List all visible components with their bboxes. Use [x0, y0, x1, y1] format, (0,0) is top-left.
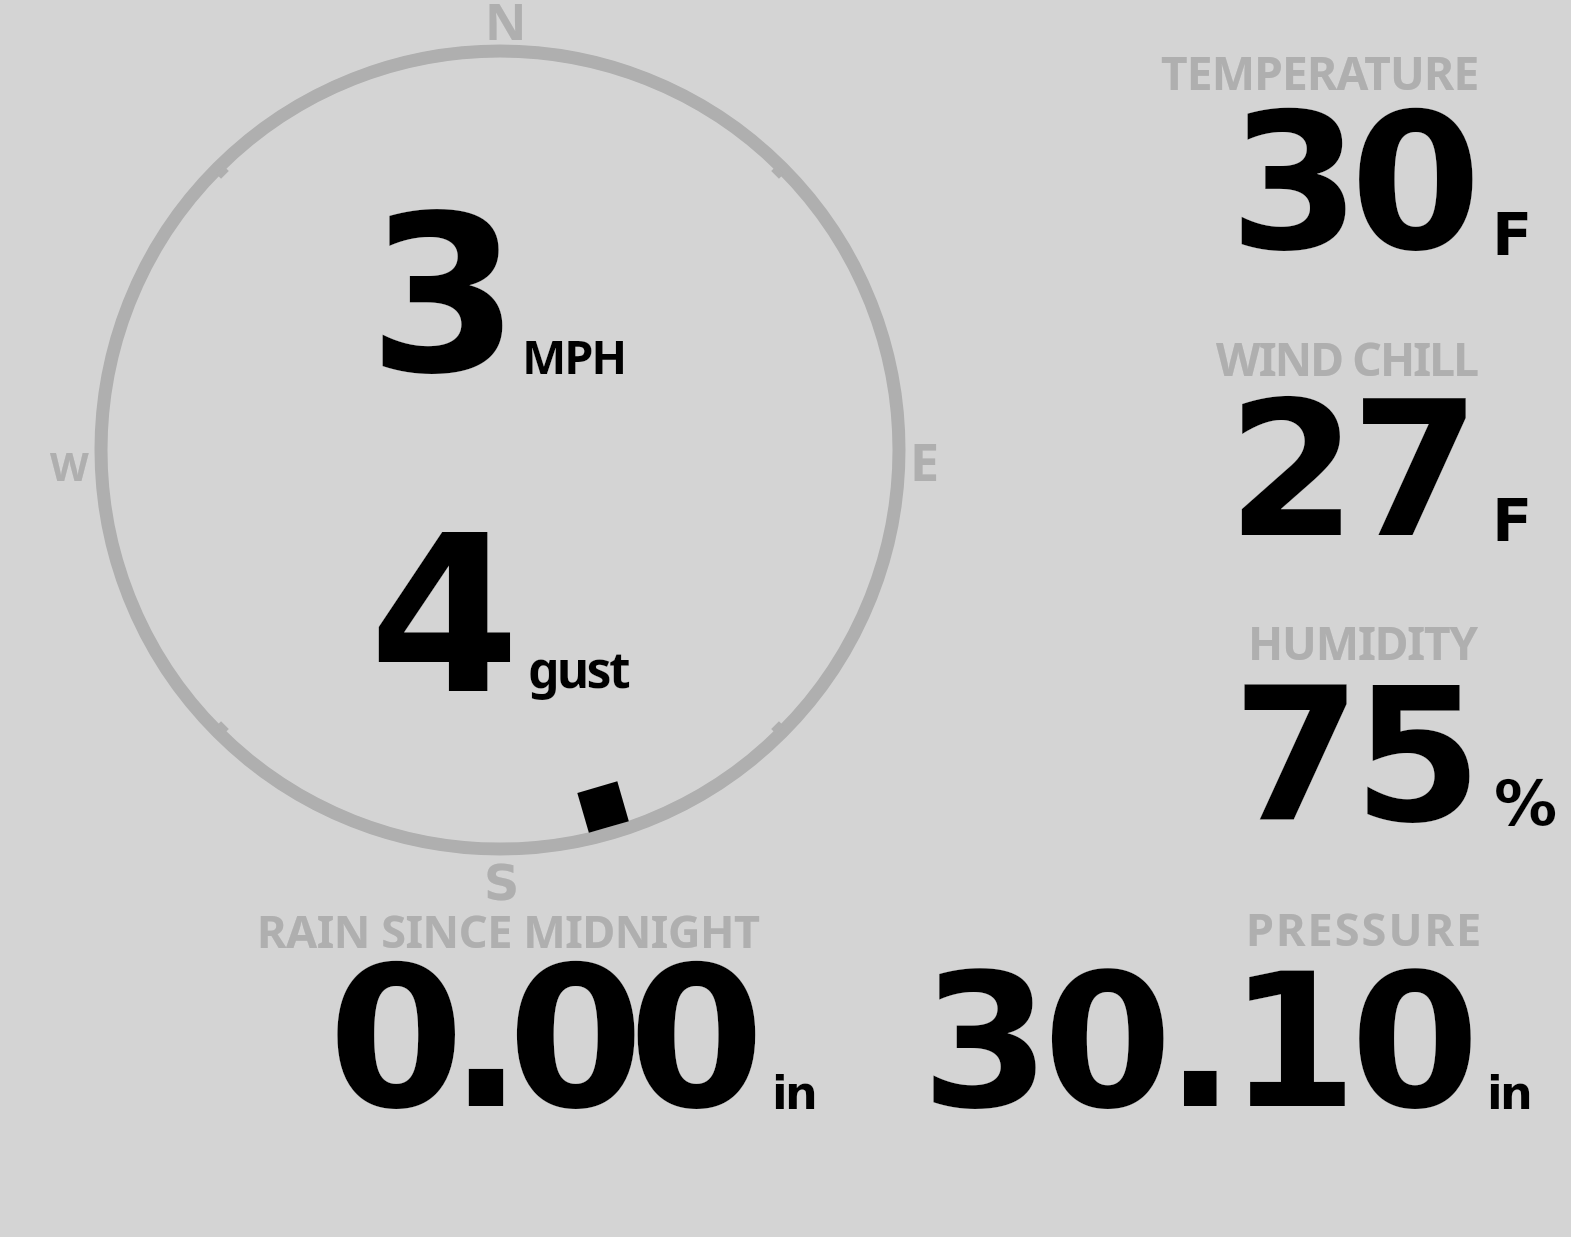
staticText: TEMPERATURE: [1161, 41, 1479, 104]
staticText: WIND CHILL: [1216, 327, 1478, 390]
staticText: MPH: [522, 324, 626, 388]
staticText: in: [1487, 1066, 1530, 1120]
staticText: S: [484, 855, 520, 912]
staticText: 3: [368, 169, 520, 423]
staticText: F: [1492, 200, 1533, 269]
button[interactable]: Temperature 30 F: [1140, 30, 1571, 285]
staticText: gust: [528, 635, 628, 703]
button[interactable]: Rain since midnight 0.00 in: [250, 900, 830, 1120]
staticText: F: [1492, 486, 1533, 555]
button[interactable]: Wind chill 27 F: [1140, 318, 1571, 573]
staticText: PRESSURE: [1246, 898, 1484, 959]
staticText: HUMIDITY: [1248, 611, 1477, 674]
staticText: N: [485, 0, 527, 54]
staticText: 30: [1229, 73, 1472, 293]
staticText: in: [772, 1066, 815, 1120]
button[interactable]: Humidity 75 percent: [1140, 600, 1571, 855]
staticText: %: [1494, 767, 1558, 840]
staticText: RAIN SINCE MIDNIGHT: [257, 900, 760, 961]
staticText: W: [50, 438, 89, 492]
button[interactable]: Pressure 30.10 in: [900, 900, 1571, 1120]
staticText: 0.00: [328, 924, 749, 1152]
staticText: 30.10: [921, 933, 1473, 1150]
staticText: E: [910, 425, 940, 496]
staticText: 27: [1227, 361, 1475, 579]
staticText: 4: [369, 490, 520, 743]
button[interactable]: Wind speed and direction: [40, 0, 960, 905]
staticText: 75: [1232, 647, 1475, 864]
